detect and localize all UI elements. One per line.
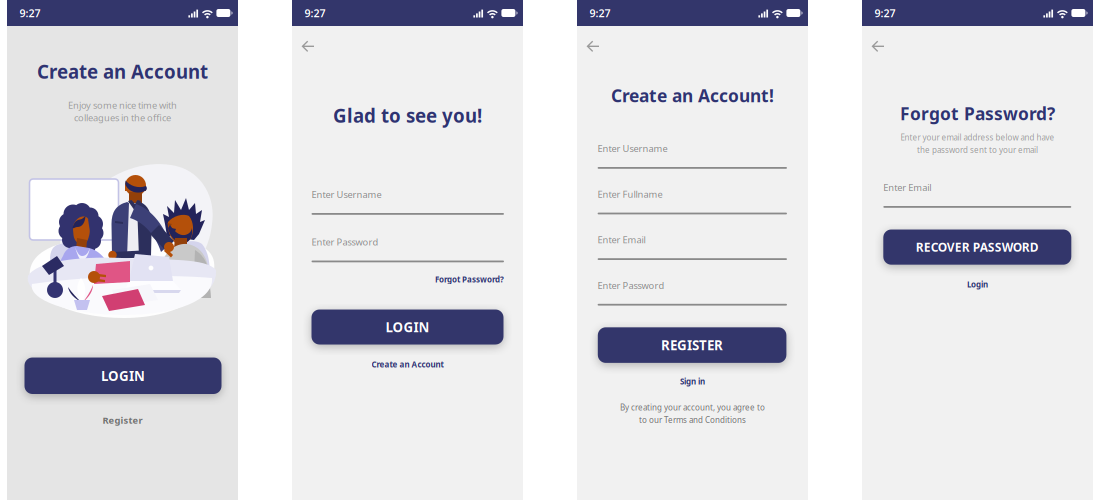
button[interactable]: Enter Email — [883, 181, 1071, 208]
button[interactable]: Back — [295, 33, 322, 59]
staticText: Create an Account — [371, 359, 443, 370]
button[interactable]: Register — [102, 414, 142, 426]
staticText: to our Terms and Conditions — [639, 415, 746, 425]
staticText: 9:27 — [19, 6, 40, 20]
staticText: Create an Account — [37, 59, 208, 84]
button[interactable]: LOGIN — [24, 357, 221, 394]
staticText: Sign in — [680, 376, 705, 387]
staticText: the password sent to your email — [917, 145, 1038, 155]
button[interactable]: Back — [865, 33, 892, 59]
button[interactable]: RECOVER PASSWORD — [883, 229, 1071, 265]
staticText: Login — [967, 279, 988, 290]
staticText: Enter Password — [311, 236, 378, 248]
staticText: Enter Email — [883, 181, 931, 194]
staticText: Forgot Password? — [900, 102, 1055, 125]
button[interactable]: Login — [967, 279, 988, 290]
button[interactable]: Enter Email — [598, 233, 787, 260]
button[interactable]: Enter Fullname — [598, 188, 787, 214]
button[interactable]: LOGIN — [311, 309, 503, 344]
button[interactable]: Enter Username — [598, 142, 787, 169]
staticText: Enter Fullname — [598, 188, 663, 200]
staticText: By creating your account, you agree to — [620, 402, 765, 413]
staticText: Enter Username — [598, 142, 668, 155]
button[interactable]: Sign in — [680, 376, 705, 387]
staticText: Enter Email — [598, 233, 646, 246]
button[interactable]: Enter Password — [311, 235, 504, 262]
button[interactable]: Enter Password — [598, 279, 787, 306]
staticText: colleagues in the office — [74, 111, 171, 124]
staticText: 9:27 — [874, 6, 895, 20]
button[interactable]: Create an Account — [371, 359, 443, 370]
staticText: Enter Username — [311, 188, 381, 201]
button[interactable]: Back — [580, 33, 607, 59]
staticText: Create an Account! — [611, 84, 774, 107]
button[interactable]: Enter Username — [311, 188, 504, 215]
staticText: Forgot Password? — [435, 274, 504, 285]
staticText: Enjoy some nice time with — [68, 99, 177, 111]
staticText: REGISTER — [661, 336, 723, 354]
staticText: 9:27 — [304, 6, 325, 20]
staticText: 9:27 — [589, 6, 610, 20]
staticText: Glad to see you! — [333, 103, 482, 128]
staticText: Register — [102, 414, 142, 426]
staticText: Enter Password — [598, 279, 665, 291]
staticText: LOGIN — [385, 318, 429, 336]
staticText: LOGIN — [101, 367, 145, 385]
staticText: RECOVER PASSWORD — [916, 239, 1039, 255]
button[interactable]: REGISTER — [598, 327, 786, 363]
staticText: Enter your email address below and have — [900, 132, 1054, 143]
button[interactable]: Forgot Password? — [435, 274, 504, 285]
